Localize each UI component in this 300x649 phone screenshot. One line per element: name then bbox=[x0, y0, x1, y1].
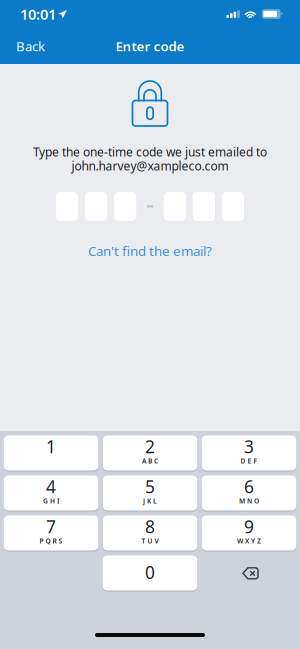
staticText: 7 bbox=[46, 515, 56, 538]
button[interactable]: 5 bbox=[103, 475, 197, 511]
staticText: T U V bbox=[141, 536, 158, 545]
button[interactable]: 9 bbox=[202, 515, 296, 551]
staticText: 0 bbox=[145, 561, 155, 584]
button[interactable]: 8 bbox=[103, 515, 197, 551]
button[interactable]: 2 bbox=[103, 435, 197, 471]
button[interactable]: Can't find the email? bbox=[78, 237, 222, 265]
staticText: john.harvey@xampleco.com bbox=[71, 158, 228, 174]
staticText: Back bbox=[16, 37, 45, 55]
staticText: W X Y Z bbox=[237, 536, 261, 545]
staticText: A B C bbox=[142, 456, 158, 465]
staticText: 8 bbox=[145, 515, 155, 538]
button[interactable]: 1 bbox=[4, 435, 98, 471]
staticText: Enter code bbox=[115, 37, 184, 55]
button[interactable]: 7 bbox=[4, 515, 98, 551]
staticText: Can't find the email? bbox=[88, 242, 212, 260]
staticText: P Q R S bbox=[39, 536, 62, 545]
staticText: 6 bbox=[244, 475, 254, 498]
button[interactable]: Back bbox=[0, 28, 61, 64]
button[interactable]: 6 bbox=[202, 475, 296, 511]
staticText: 2 bbox=[145, 435, 155, 458]
staticText: 3 bbox=[244, 435, 254, 458]
staticText: 9 bbox=[244, 515, 254, 538]
staticText: G H I bbox=[43, 496, 59, 505]
button[interactable]: Delete bbox=[202, 555, 296, 591]
staticText: M N O bbox=[239, 496, 259, 505]
button[interactable]: 0 bbox=[103, 555, 197, 591]
staticText: 10:01 bbox=[20, 4, 56, 24]
staticText: 1 bbox=[46, 435, 56, 458]
button[interactable]: 4 bbox=[4, 475, 98, 511]
staticText: Type the one-time code we just emailed t… bbox=[33, 144, 267, 160]
staticText: 5 bbox=[145, 475, 155, 498]
staticText: J K L bbox=[143, 496, 157, 505]
staticText: D E F bbox=[240, 456, 257, 465]
staticText: 4 bbox=[46, 475, 56, 498]
button[interactable]: 3 bbox=[202, 435, 296, 471]
